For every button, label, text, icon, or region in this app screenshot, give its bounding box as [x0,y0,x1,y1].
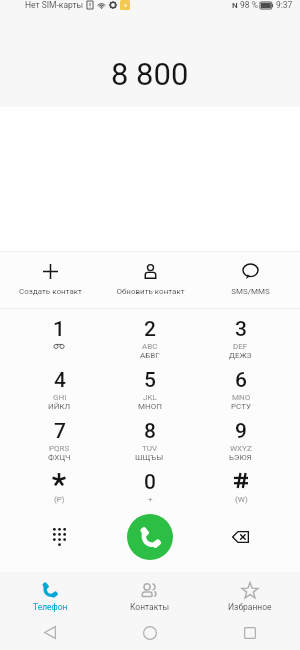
staticText: + [148,495,153,504]
staticText: (P) [54,495,65,504]
button[interactable]: 5 [104,360,195,411]
button[interactable]: 6 [195,360,286,411]
button[interactable]: 4 [14,360,104,411]
button[interactable]: 9 [195,411,286,462]
staticText: МНОП [138,402,162,411]
staticText: 98 % [240,0,258,10]
staticText: АБВГ [140,351,160,360]
staticText: WXYZ [230,444,252,453]
staticText: РСТУ [231,402,251,411]
button[interactable]: Recents [200,615,300,650]
staticText: MNO [232,393,251,402]
button[interactable]: Избранное [200,572,300,615]
staticText: SMS/MMS [231,287,270,296]
button[interactable]: Backspace [195,513,286,572]
staticText: JKL [143,393,157,402]
staticText: 8 [144,419,156,444]
staticText: 5 [144,368,156,393]
staticText: N [232,1,238,10]
button[interactable]: Создать контакт [0,252,100,308]
staticText: Создать контакт [19,287,82,296]
staticText: Избранное [228,602,272,612]
staticText: DEF [233,342,248,351]
button[interactable]: 7 [14,411,104,462]
staticText: 3 [235,317,247,342]
button[interactable]: 1 [14,309,104,360]
staticText: Нет SIM-карты [25,0,84,10]
staticText: TUV [142,444,158,453]
staticText: Телефон [33,602,68,612]
button[interactable]: Телефон [0,572,100,615]
button[interactable]: Call [127,514,173,560]
staticText: ЬЭЮЯ [229,453,252,462]
staticText: 7 [54,419,66,444]
button[interactable]: 3 [195,309,286,360]
staticText: Контакты [130,602,170,612]
staticText: Обновить контакт [116,287,185,296]
button[interactable]: (P) [14,462,104,513]
staticText: ИЙКЛ [48,402,71,411]
staticText: 2 [144,317,156,342]
staticText: 8 800 [111,56,189,92]
button[interactable]: Контакты [100,572,200,615]
button[interactable]: (W) [195,462,286,513]
staticText: 9 [235,419,247,444]
button[interactable]: SMS/MMS [200,252,300,308]
button[interactable]: 2 [104,309,195,360]
button[interactable]: 0 [104,462,195,513]
staticText: 6 [235,368,247,393]
button[interactable]: Back [0,615,100,650]
staticText: 0 [144,470,156,495]
staticText: PQRS [49,444,70,453]
button[interactable]: Обновить контакт [100,252,200,308]
staticText: ШЩЪЫ [135,453,164,462]
staticText: 1 [53,317,65,342]
staticText: 4 [54,368,66,393]
staticText: (W) [235,495,248,504]
staticText: ФХЦЧ [48,453,71,462]
staticText: ABC [142,342,158,351]
button[interactable]: Hide dialpad [14,513,104,572]
button[interactable]: Home [100,615,200,650]
staticText: 9:37 [276,0,293,10]
button[interactable]: 8 [104,411,195,462]
staticText: GHI [53,393,67,402]
staticText: ДЕЖЗ [229,351,252,360]
